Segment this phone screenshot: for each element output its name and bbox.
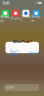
staticText: Allow Paste?: [13, 40, 31, 44]
staticText: Chrome: [21, 15, 31, 22]
staticText: Telegram: [31, 15, 41, 22]
button[interactable]: Telegram: [31, 10, 41, 20]
button[interactable]: WhatsApp: [0, 10, 10, 20]
button[interactable]: Search: [4, 84, 39, 91]
button[interactable]: Don't Allow: [8, 52, 21, 55]
staticText: ıl: [36, 1, 38, 5]
staticText: Search: [6, 86, 14, 89]
staticText: Allow: [29, 52, 37, 55]
staticText: 9:41: [2, 0, 9, 6]
staticText: Photos: [11, 17, 21, 20]
button[interactable]: Photos: [11, 10, 21, 20]
button[interactable]: Chrome: [21, 10, 31, 20]
staticText: Don't Allow: [10, 50, 18, 57]
button[interactable]: Allow: [29, 52, 37, 55]
staticText: WhatsApp: [0, 15, 10, 22]
